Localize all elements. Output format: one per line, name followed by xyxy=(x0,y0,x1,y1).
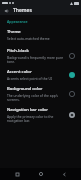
button[interactable]: Navigation bar color xyxy=(0,104,81,125)
button[interactable]: Pitch-black xyxy=(0,45,81,66)
staticText: Select auto-matched theme xyxy=(7,36,50,40)
button[interactable]: Back xyxy=(3,7,10,14)
button[interactable]: Background color xyxy=(0,83,81,104)
button[interactable]: Back xyxy=(58,168,70,180)
button[interactable]: Pick color xyxy=(67,110,76,119)
button[interactable]: Toggle on xyxy=(67,70,76,79)
staticText: Background is frequently more pure tone. xyxy=(7,55,64,63)
staticText: Accents select point of the UI xyxy=(7,76,52,80)
staticText: Theme xyxy=(7,29,21,35)
button[interactable]: Theme xyxy=(0,26,81,43)
staticText: The underlying color of the app's screen… xyxy=(7,93,64,101)
button[interactable]: Toggle off xyxy=(67,89,76,98)
staticText: Navigation bar color xyxy=(7,107,48,113)
staticText: Pitch-black xyxy=(7,48,29,54)
staticText: Apply the primary color to the navigatio… xyxy=(7,114,64,122)
staticText: Themes xyxy=(13,7,32,14)
button[interactable]: Toggle off xyxy=(67,51,76,60)
button[interactable]: Accent color xyxy=(0,66,81,83)
staticText: Accent color xyxy=(7,69,32,75)
staticText: Appearance xyxy=(7,19,28,24)
button[interactable]: Recents xyxy=(11,168,23,180)
button[interactable]: Home xyxy=(35,168,47,180)
staticText: Background color xyxy=(7,86,43,92)
